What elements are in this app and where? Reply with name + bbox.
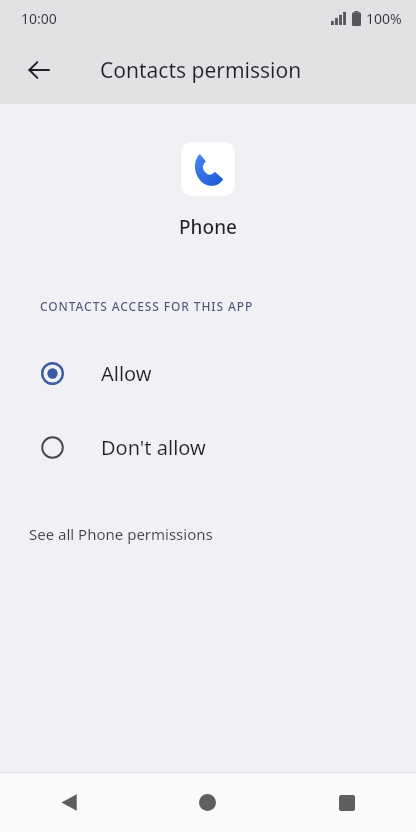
staticText: 100% xyxy=(366,9,402,28)
staticText: CONTACTS ACCESS FOR THIS APP xyxy=(40,298,254,314)
button[interactable]: Allow xyxy=(0,336,416,410)
button[interactable]: See all Phone permissions xyxy=(0,520,416,554)
staticText: 10:00 xyxy=(21,9,57,28)
button[interactable]: Home xyxy=(138,773,277,832)
staticText: Don't allow xyxy=(101,434,206,461)
button[interactable]: Back xyxy=(0,773,138,832)
staticText: Contacts permission xyxy=(100,56,302,85)
staticText: See all Phone permissions xyxy=(29,524,213,544)
button[interactable]: Don't allow xyxy=(0,410,416,484)
staticText: Phone xyxy=(0,214,416,240)
button[interactable]: Recent apps xyxy=(277,773,416,832)
button[interactable]: Back xyxy=(15,46,63,94)
staticText: Allow xyxy=(101,360,152,387)
